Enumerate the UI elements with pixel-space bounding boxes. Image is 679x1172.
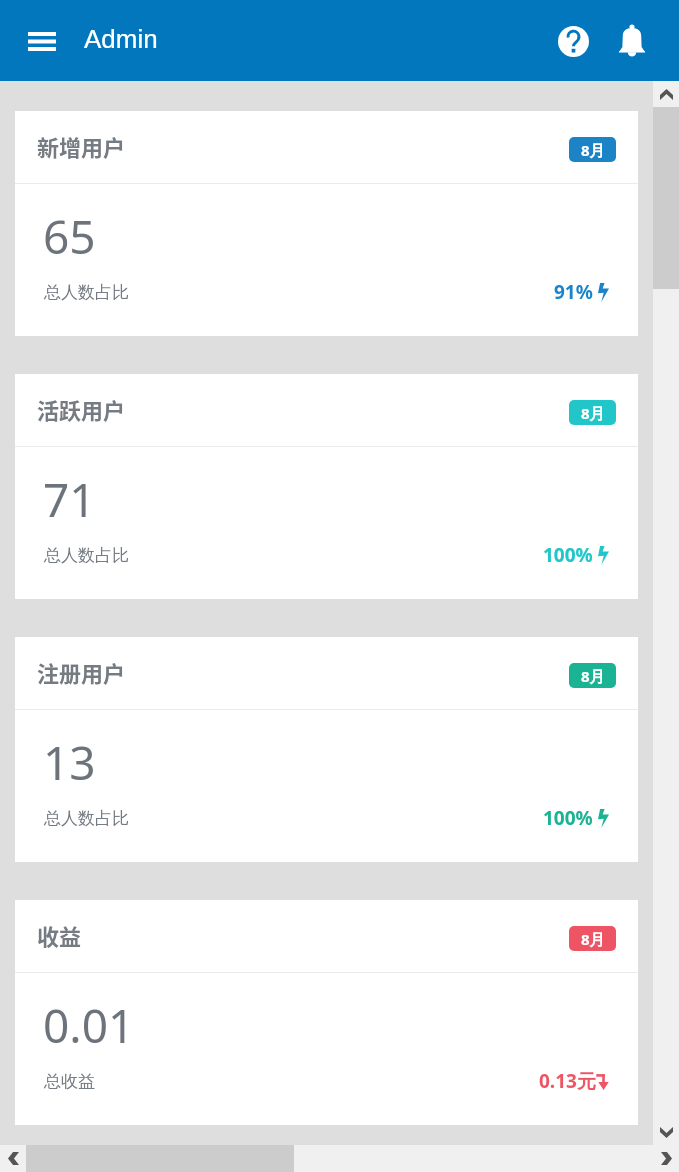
button[interactable]: 新增用户 <box>15 111 638 336</box>
staticText: 总人数占比 <box>44 545 129 566</box>
staticText: 总收益 <box>44 1071 95 1092</box>
staticText: 0.13元 <box>539 1068 596 1094</box>
button[interactable]: 注册用户 <box>15 637 638 862</box>
button[interactable]: Notifications <box>606 15 658 67</box>
button[interactable]: Scroll down <box>653 1119 679 1145</box>
staticText: 91% <box>554 279 593 305</box>
staticText: 活跃用户 <box>37 393 126 425</box>
staticText: 71 <box>43 468 96 531</box>
staticText: 总人数占比 <box>44 808 129 829</box>
staticText: 8月 <box>581 403 605 423</box>
staticText: 8月 <box>581 929 605 949</box>
button[interactable]: Menu <box>14 11 70 71</box>
staticText: Admin <box>84 24 158 53</box>
staticText: 100% <box>543 805 593 831</box>
button[interactable]: 活跃用户 <box>15 374 638 599</box>
staticText: 8月 <box>581 666 605 686</box>
staticText: 100% <box>543 542 593 568</box>
button[interactable]: 收益 <box>15 900 638 1125</box>
staticText: 总人数占比 <box>44 282 129 303</box>
button[interactable]: Scroll up <box>653 81 679 107</box>
staticText: 收益 <box>37 919 82 951</box>
staticText: 注册用户 <box>37 656 126 688</box>
staticText: 0.01 <box>43 994 135 1057</box>
staticText: 8月 <box>581 140 605 160</box>
staticText: 新增用户 <box>37 130 126 162</box>
button[interactable]: Help <box>547 15 599 67</box>
staticText: 13 <box>43 731 96 794</box>
button[interactable]: Scroll left <box>0 1145 26 1172</box>
staticText: 65 <box>43 205 96 268</box>
button[interactable]: Scroll right <box>653 1145 679 1172</box>
